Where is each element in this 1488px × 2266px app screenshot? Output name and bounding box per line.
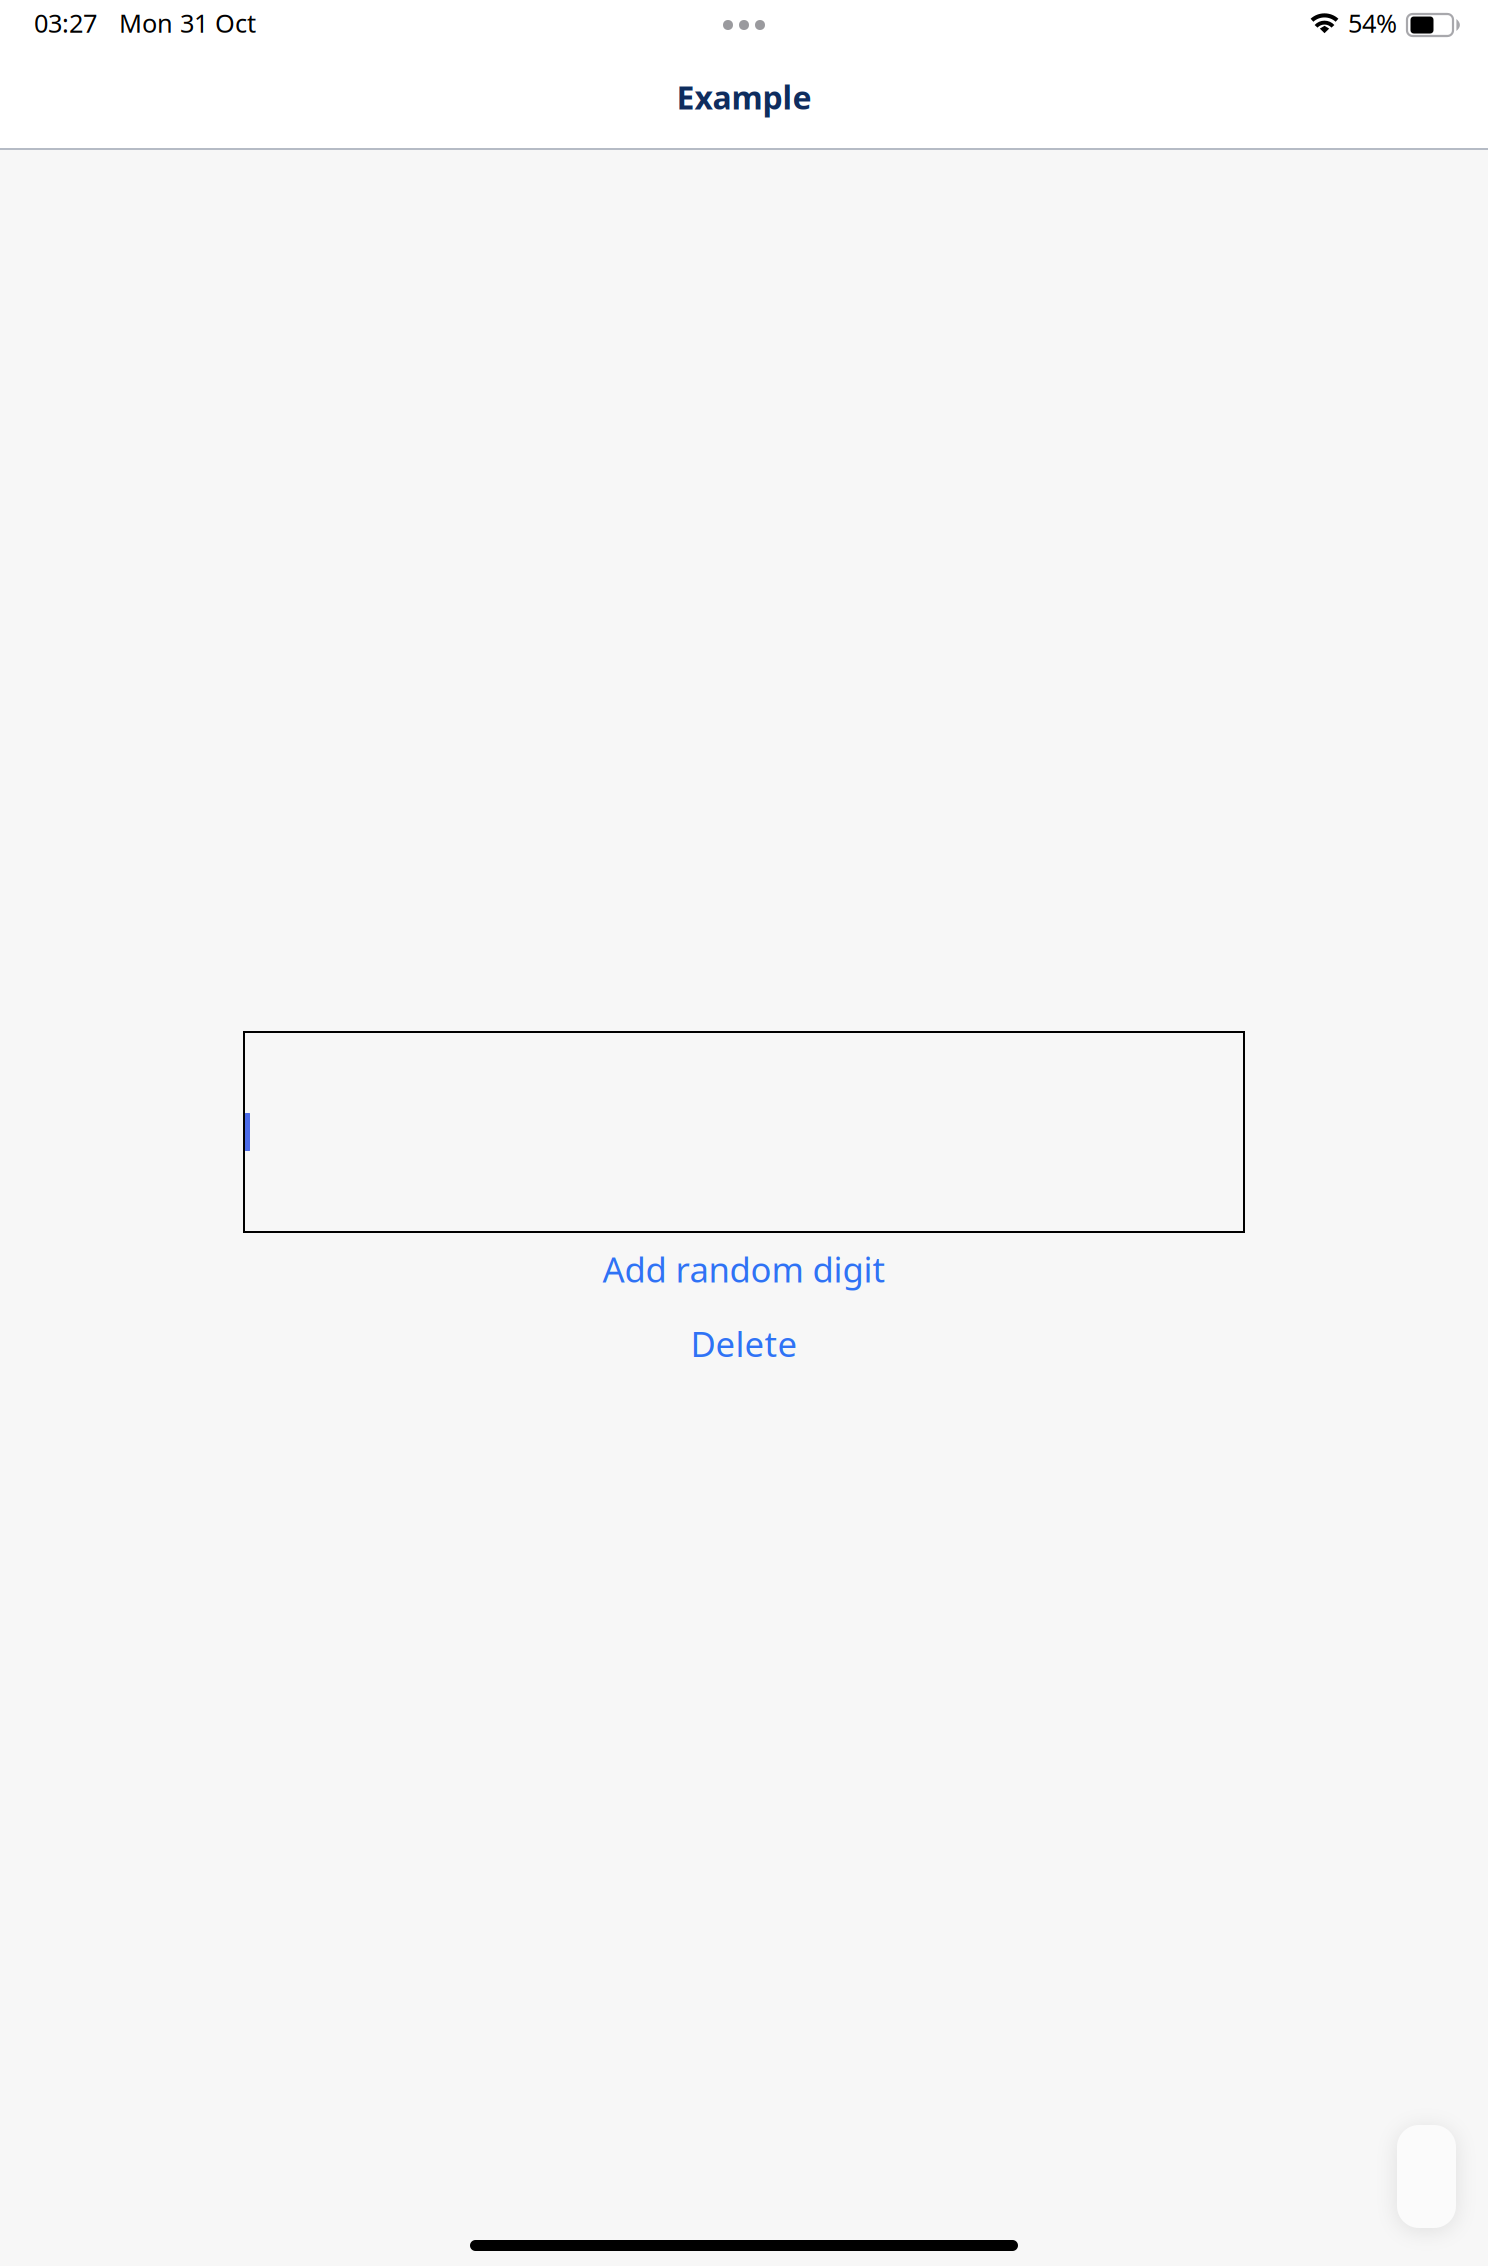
button[interactable]: Add random digit <box>0 1232 1488 1306</box>
staticText: Mon 31 Oct <box>119 6 256 40</box>
staticText: Example <box>676 76 811 118</box>
button[interactable]: Digits text field <box>244 1032 1244 1232</box>
staticText: 54% <box>1348 6 1397 40</box>
staticText: 03:27 <box>34 6 97 40</box>
staticText: Delete <box>690 1320 797 1366</box>
button[interactable]: Delete <box>0 1306 1488 1381</box>
staticText: Add random digit <box>602 1246 885 1292</box>
